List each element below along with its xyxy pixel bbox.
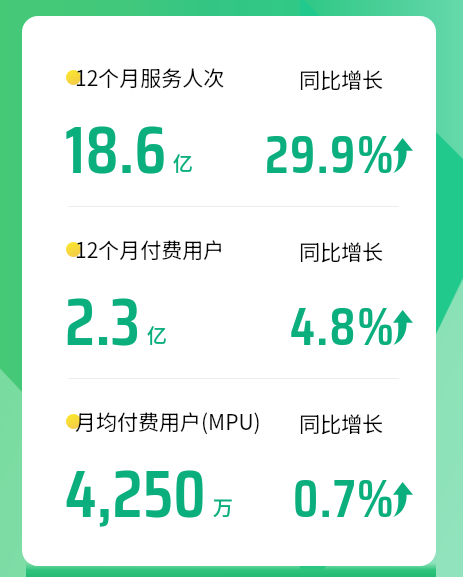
button[interactable]: 同比增长 — [299, 408, 383, 438]
button[interactable]: 月均付费用户(MPU) — [66, 406, 267, 436]
staticText: 18.6 — [65, 97, 167, 202]
button[interactable]: 12个月付费用户 — [66, 234, 231, 264]
staticText: 4,250 — [65, 441, 207, 546]
button[interactable]: 同比增长 — [299, 64, 383, 94]
staticText: 4.8% — [290, 285, 396, 368]
button[interactable]: 12个月服务人次 — [66, 62, 231, 92]
staticText: 12个月服务人次 — [75, 62, 225, 92]
button[interactable]: 同比增长 — [299, 236, 383, 266]
staticText: 万 — [213, 492, 233, 521]
staticText: 29.9% — [265, 113, 396, 196]
staticText: 月均付费用户(MPU) — [75, 406, 261, 436]
staticText: 12个月付费用户 — [75, 234, 225, 264]
button[interactable]: 同比增长 — [393, 310, 413, 345]
staticText: 亿 — [173, 148, 193, 177]
button[interactable]: 同比增长 — [393, 482, 413, 517]
staticText: 亿 — [147, 320, 167, 349]
button[interactable]: 同比增长 — [393, 138, 413, 173]
staticText: 0.7% — [293, 457, 396, 540]
staticText: 2.3 — [65, 269, 141, 374]
